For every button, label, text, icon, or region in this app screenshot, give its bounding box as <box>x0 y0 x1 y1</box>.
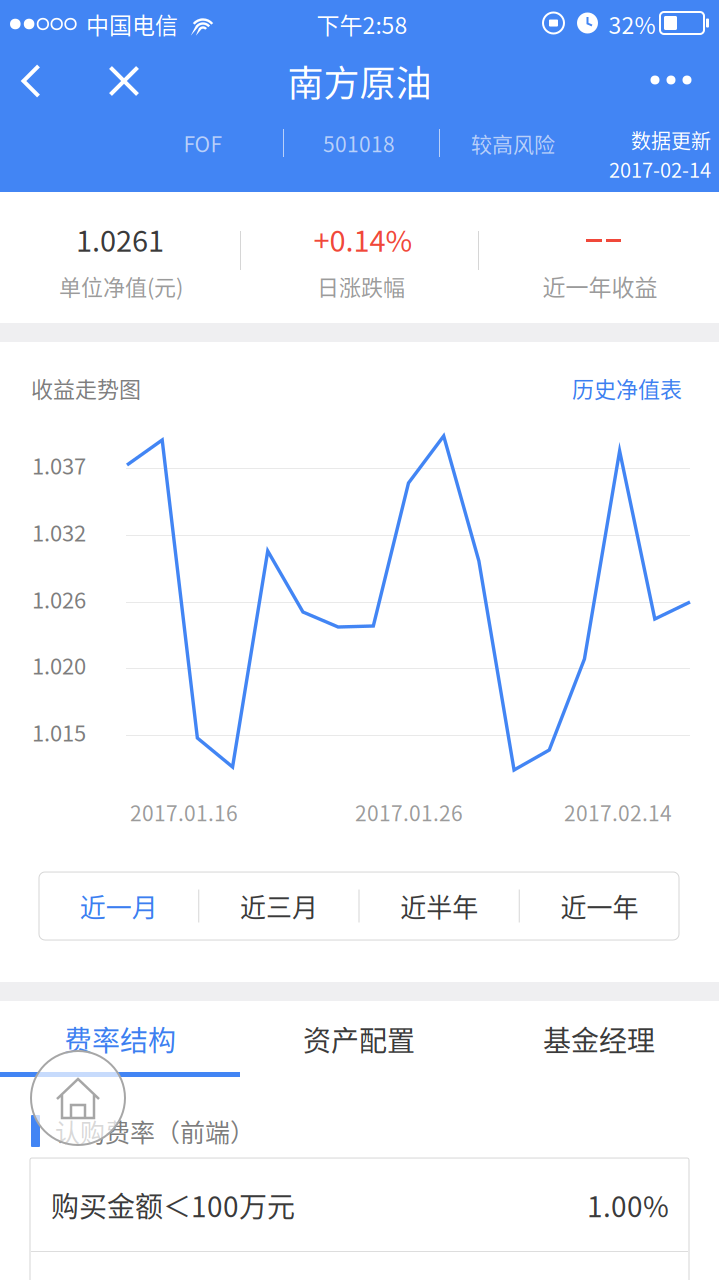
staticText: 南方原油 <box>287 55 431 107</box>
staticText: 2017.01.16 <box>130 797 238 827</box>
staticText: 单位净值(元) <box>59 270 183 302</box>
staticText: 历史净值表 <box>572 372 682 404</box>
button[interactable]: Home <box>30 1050 126 1146</box>
staticText: 1.032 <box>32 516 86 548</box>
staticText: FOF <box>183 128 222 158</box>
staticText: 2017.01.26 <box>355 797 463 827</box>
button[interactable]: 费率结构 <box>0 1001 240 1077</box>
staticText: 1.026 <box>32 583 86 615</box>
button[interactable]: 历史净值表 <box>566 364 688 412</box>
staticText: 近一年收益 <box>542 269 657 303</box>
staticText: 近三月 <box>240 887 318 925</box>
staticText: 1.0261 <box>76 218 164 260</box>
button[interactable]: Back <box>0 50 62 112</box>
staticText: 中国电信 <box>86 7 178 41</box>
staticText: 近半年 <box>400 887 478 925</box>
button[interactable]: 基金经理 <box>479 1001 719 1077</box>
staticText: 2017.02.14 <box>564 797 672 827</box>
staticText: 近一年 <box>560 887 638 925</box>
staticText: 32% <box>608 7 655 41</box>
staticText: 基金经理 <box>543 1019 655 1059</box>
staticText: 1.00% <box>587 1185 669 1225</box>
button[interactable]: 近一年 <box>520 872 679 940</box>
staticText: 数据更新 <box>631 125 711 154</box>
button[interactable]: More <box>635 50 707 110</box>
staticText: 1.015 <box>32 716 86 748</box>
staticText: 购买金额＜100万元 <box>51 1185 295 1225</box>
staticText: 较高风险 <box>471 128 555 158</box>
staticText: 1.020 <box>32 649 86 681</box>
button[interactable]: 资产配置 <box>239 1001 479 1077</box>
staticText: 501018 <box>323 128 395 158</box>
staticText: +0.14% <box>313 218 412 260</box>
button[interactable]: 近一月 <box>39 872 198 940</box>
button[interactable]: Close <box>93 50 155 112</box>
staticText: 1.037 <box>32 449 86 481</box>
staticText: 下午2:58 <box>316 7 407 41</box>
staticText: 近一月 <box>80 887 158 925</box>
button[interactable]: 近半年 <box>359 872 519 940</box>
staticText: 收益走势图 <box>31 372 141 404</box>
staticText: 2017-02-14 <box>609 154 711 183</box>
staticText: 费率结构 <box>64 1019 176 1059</box>
staticText: 认购费率（前端） <box>55 1113 255 1149</box>
staticText: 日涨跌幅 <box>317 270 405 302</box>
staticText: 资产配置 <box>303 1019 415 1059</box>
button[interactable]: 近三月 <box>199 872 358 940</box>
